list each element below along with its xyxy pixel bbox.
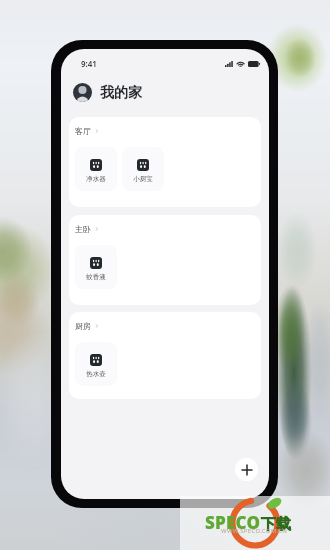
staticText: 客厅 [75, 126, 91, 136]
button[interactable]: 净水器 [75, 147, 117, 191]
staticText: 下载 [261, 515, 291, 534]
staticText: 热水壶 [86, 370, 106, 378]
button[interactable]: 蚊香液 [75, 245, 117, 289]
staticText: 厨房 [75, 321, 91, 331]
staticText: 我的家 [100, 84, 142, 102]
button[interactable]: 客厅 [69, 117, 261, 207]
staticText: 主卧 [75, 224, 91, 234]
button[interactable]: 热水壶 [75, 342, 117, 386]
staticText: 小厨宝 [133, 175, 153, 183]
button[interactable]: 厨房 [69, 312, 261, 399]
button[interactable]: 用户头像 [73, 83, 92, 102]
staticText: 蚊香液 [86, 273, 106, 281]
button[interactable]: 添加设备 [235, 458, 258, 481]
staticText: SPECO [205, 511, 261, 534]
button[interactable]: 主卧 [69, 215, 261, 305]
button[interactable]: 小厨宝 [122, 147, 164, 191]
staticText: 9:41 [81, 58, 97, 69]
staticText: WWW.SPECO.COM.CN [221, 527, 287, 535]
staticText: 净水器 [86, 175, 106, 183]
